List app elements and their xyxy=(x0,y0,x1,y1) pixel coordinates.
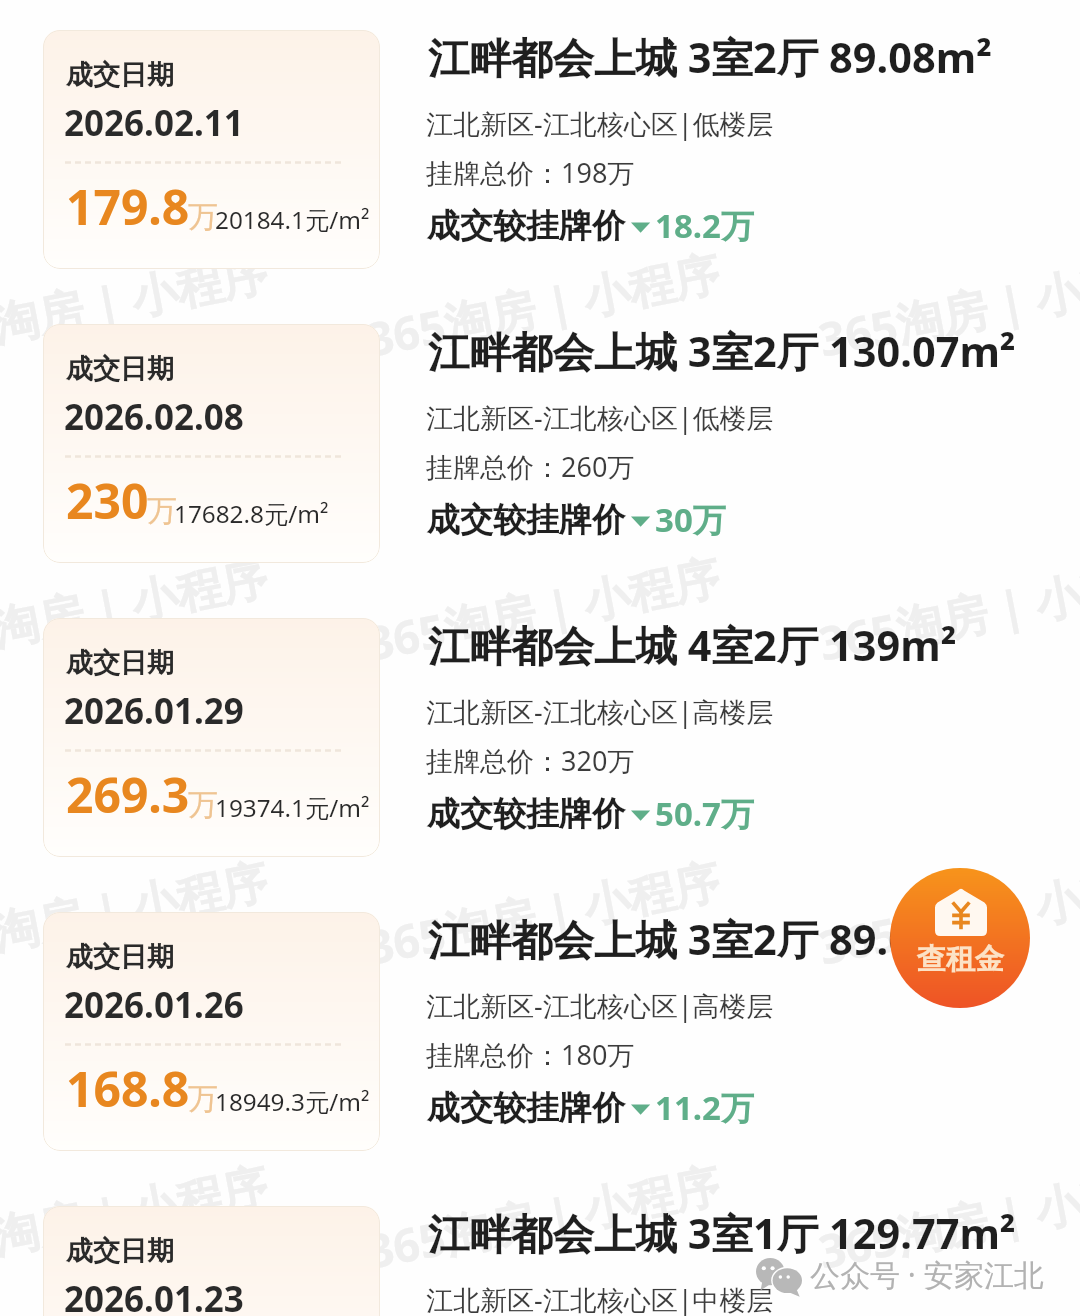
staticText: 365淘房 | 小程序 xyxy=(813,544,1080,675)
staticText: 江北新区-江北核心区|低楼层 xyxy=(426,399,774,436)
staticText: 365淘房 | 小程序 xyxy=(0,1152,274,1283)
staticText: 成交较挂牌价 xyxy=(427,205,625,247)
staticText: 365淘房 | 小程序 xyxy=(0,544,274,675)
staticText: 365淘房 | 小程序 xyxy=(0,240,274,371)
staticText: 230 xyxy=(66,468,149,533)
staticText: 万 xyxy=(188,1080,218,1118)
staticText: 江畔都会上城 3室2厅 130.07m² xyxy=(428,323,1016,380)
staticText: 江北新区-江北核心区|低楼层 xyxy=(426,105,774,142)
button[interactable]: 江畔都会上城 3室2厅 130.07m² xyxy=(0,294,1080,588)
button[interactable]: 江畔都会上城 3室1厅 129.77m² xyxy=(0,1176,1080,1316)
staticText: 168.8 xyxy=(66,1056,190,1121)
staticText: 江北新区-江北核心区|高楼层 xyxy=(426,987,774,1024)
staticText: 江北新区-江北核心区|中楼层 xyxy=(426,1281,774,1316)
staticText: 365淘房 | 小程序 xyxy=(0,848,274,979)
staticText: 查租金 xyxy=(917,941,1004,978)
staticText: 2026.02.08 xyxy=(64,393,244,441)
staticText: 成交较挂牌价 xyxy=(427,1087,625,1129)
staticText: 成交日期 xyxy=(66,940,174,974)
staticText: 挂牌总价：260万 xyxy=(426,448,635,485)
staticText: 20184.1元/m² xyxy=(215,203,370,236)
staticText: 江畔都会上城 3室1厅 129.77m² xyxy=(428,1205,1016,1262)
staticText: 江畔都会上城 4室2厅 139m² xyxy=(428,617,957,674)
staticText: 179.8 xyxy=(66,174,190,239)
staticText: 365淘房 | 小程序 xyxy=(361,848,726,979)
staticText: 365淘房 | 小程序 xyxy=(361,1152,726,1283)
staticText: 18949.3元/m² xyxy=(215,1085,370,1118)
staticText: 2026.01.23 xyxy=(64,1275,244,1316)
staticText: 江畔都会上城 3室2厅 89.08m² xyxy=(428,911,992,968)
staticText: 江北新区-江北核心区|高楼层 xyxy=(426,693,774,730)
button[interactable]: 江畔都会上城 3室2厅 89.08m² xyxy=(0,0,1080,294)
staticText: 成交日期 xyxy=(66,352,174,386)
staticText: 挂牌总价：320万 xyxy=(426,742,635,779)
staticText: 18.2万 xyxy=(655,203,754,248)
staticText: 万 xyxy=(188,198,218,236)
staticText: 挂牌总价：198万 xyxy=(426,154,635,191)
staticText: 万 xyxy=(147,492,177,530)
staticText: 成交日期 xyxy=(66,646,174,680)
staticText: 公众号 · 安家江北 xyxy=(810,1254,1044,1295)
staticText: 365淘房 | 小程序 xyxy=(361,544,726,675)
staticText: 2026.01.29 xyxy=(64,687,244,735)
staticText: 成交日期 xyxy=(66,58,174,92)
staticText: 30万 xyxy=(655,497,726,542)
staticText: 2026.01.26 xyxy=(64,981,244,1029)
staticText: 17682.8元/m² xyxy=(174,497,329,530)
button[interactable]: 公众号 安家江北 xyxy=(756,1254,1044,1295)
staticText: 成交日期 xyxy=(66,1234,174,1268)
staticText: 365淘房 | 小程序 xyxy=(813,240,1080,371)
staticText: 365淘房 | 小程序 xyxy=(361,240,726,371)
staticText: 11.2万 xyxy=(655,1085,754,1130)
staticText: 成交较挂牌价 xyxy=(427,793,625,835)
staticText: 365淘房 | 小程序 xyxy=(813,848,1080,979)
staticText: 365淘房 | 小程序 xyxy=(813,1152,1080,1283)
staticText: 50.7万 xyxy=(655,791,754,836)
staticText: 19374.1元/m² xyxy=(215,791,370,824)
staticText: 269.3 xyxy=(66,762,190,827)
staticText: 2026.02.11 xyxy=(64,99,244,147)
staticText: 江畔都会上城 3室2厅 89.08m² xyxy=(428,29,992,86)
staticText: 成交较挂牌价 xyxy=(427,499,625,541)
button[interactable]: 查租金 xyxy=(890,868,1030,1008)
staticText: 挂牌总价：180万 xyxy=(426,1036,635,1073)
button[interactable]: 江畔都会上城 3室2厅 89.08m² xyxy=(0,882,1080,1176)
staticText: 万 xyxy=(188,786,218,824)
button[interactable]: 江畔都会上城 4室2厅 139m² xyxy=(0,588,1080,882)
